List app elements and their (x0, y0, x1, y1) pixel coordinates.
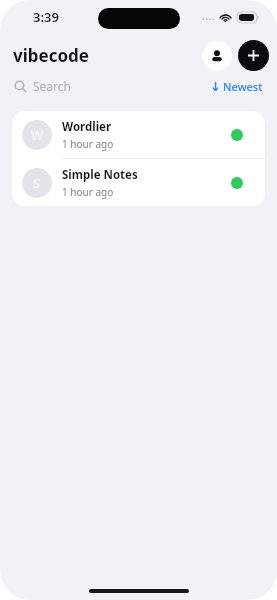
staticText: vibecode (13, 44, 89, 67)
button[interactable]: Search (14, 78, 71, 94)
staticText: 3:39 (33, 8, 59, 26)
button[interactable]: Create new (238, 40, 269, 71)
button[interactable]: W (12, 111, 265, 158)
staticText: 1 hour ago (62, 185, 114, 199)
staticText: S (33, 174, 41, 192)
staticText: Search (33, 78, 71, 94)
staticText: Simple Notes (62, 167, 138, 183)
staticText: W (31, 126, 44, 144)
button[interactable]: Profile (202, 41, 232, 71)
staticText: 1 hour ago (62, 137, 114, 151)
staticText: Newest (223, 79, 263, 94)
staticText: Wordlier (62, 119, 112, 135)
button[interactable]: S (12, 159, 265, 206)
button[interactable]: Newest (211, 79, 263, 94)
